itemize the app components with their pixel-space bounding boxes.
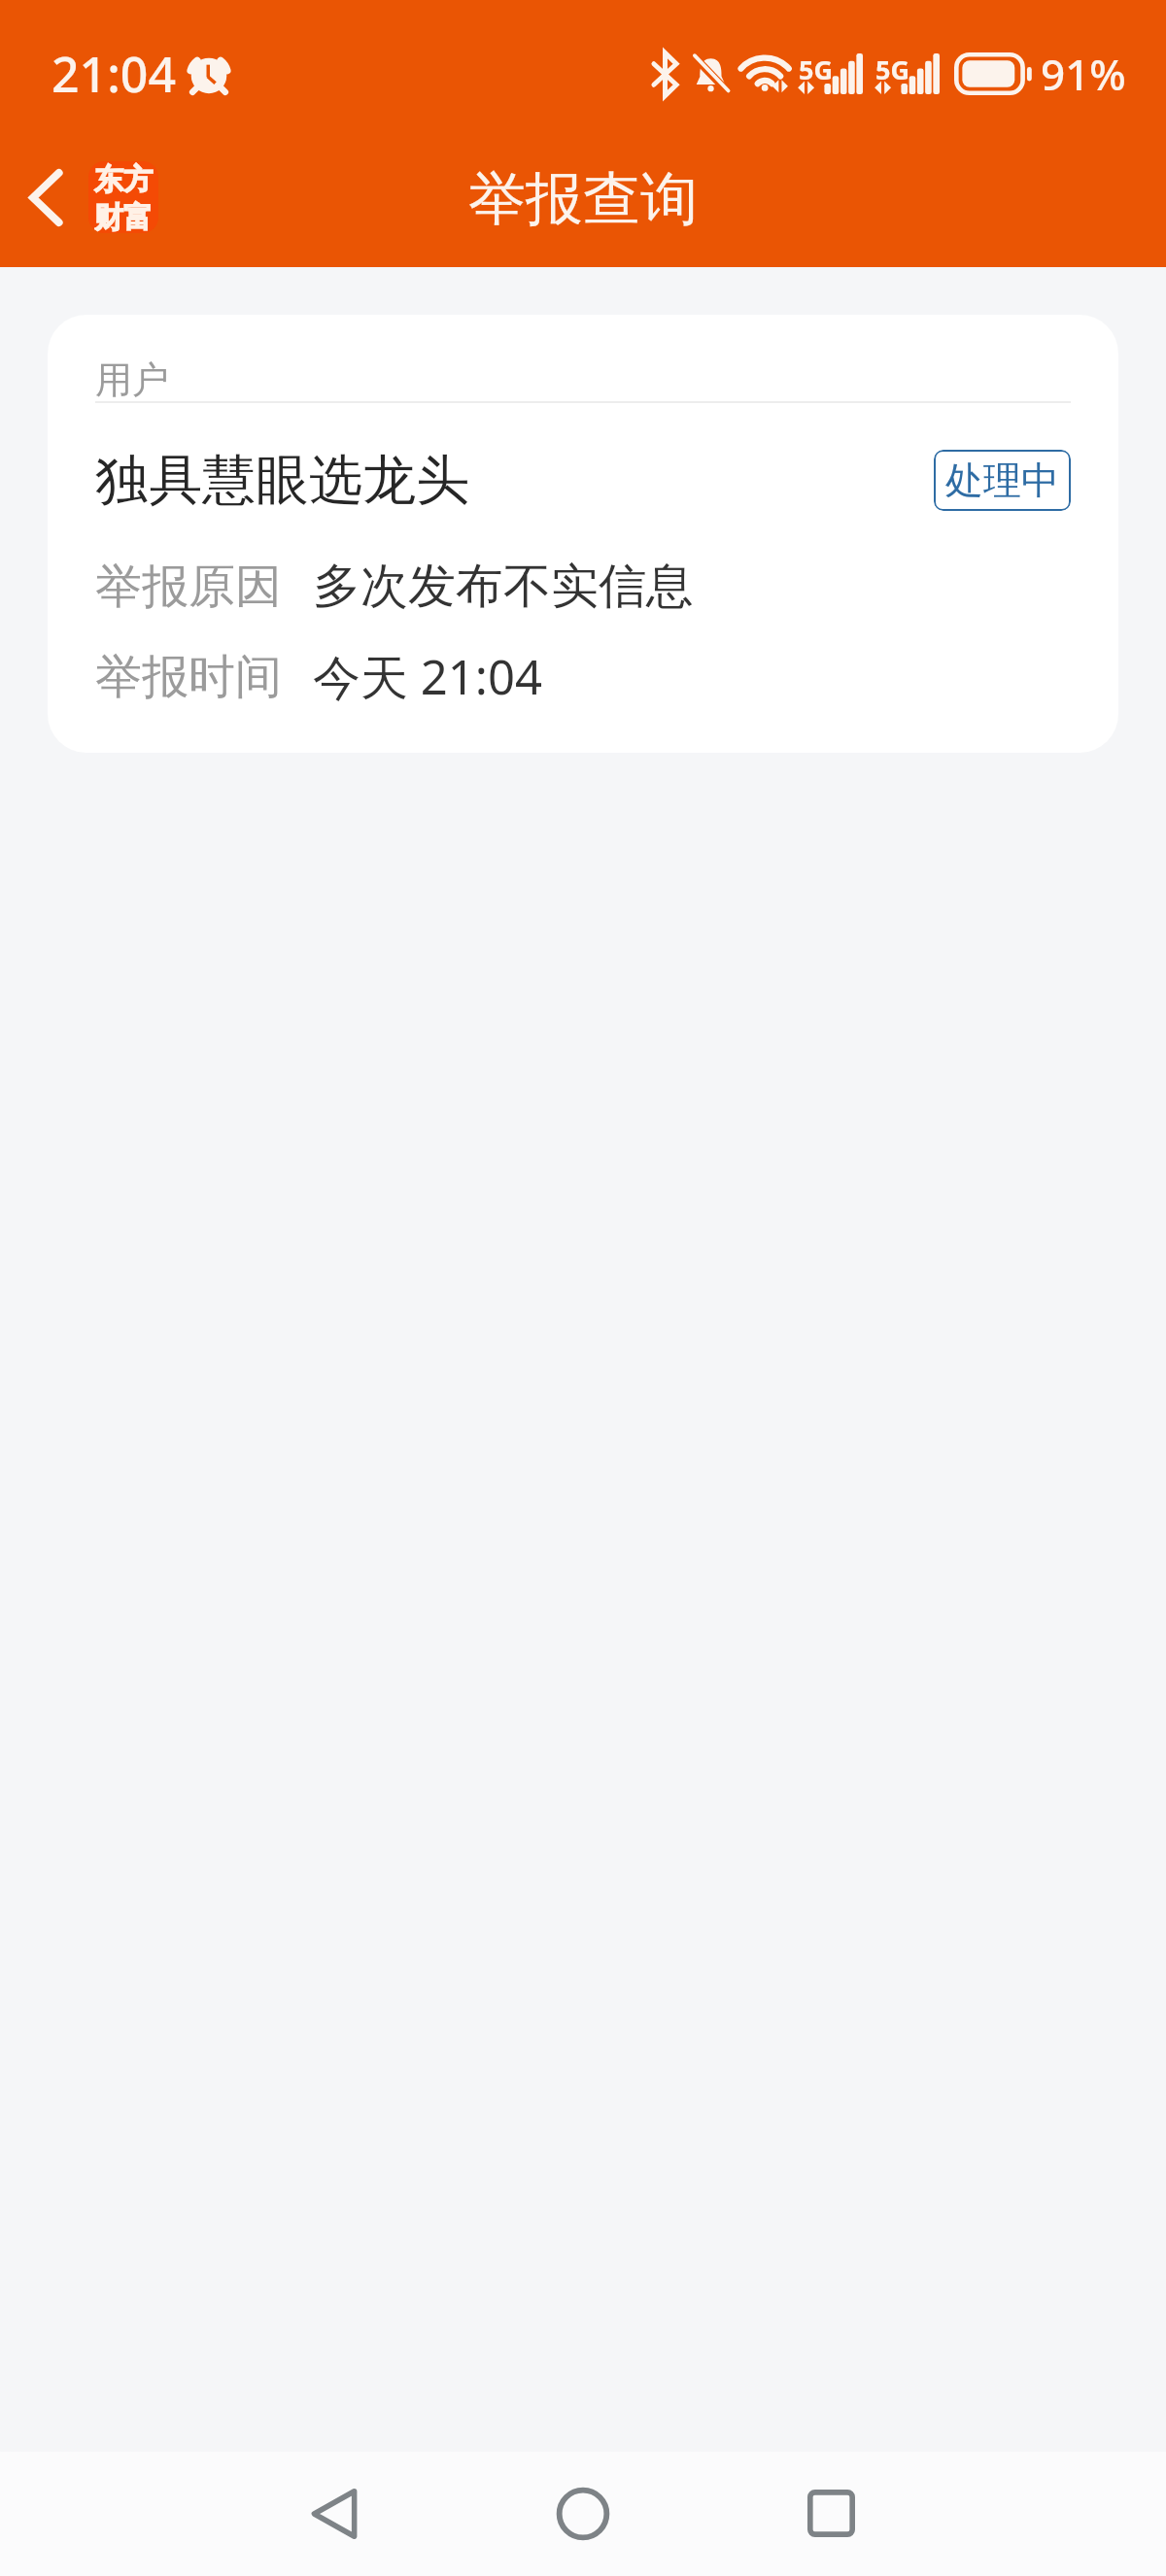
staticText: 今天 21:04 (313, 644, 542, 709)
button[interactable]: 用户 (48, 315, 1118, 753)
staticText: 财富 (94, 199, 153, 233)
staticText: 处理中 (945, 457, 1059, 504)
staticText: 举报时间 (95, 648, 282, 706)
button[interactable]: 处理中 (934, 450, 1071, 511)
staticText: 用户 (95, 356, 169, 403)
staticText: 21:04 (51, 41, 176, 107)
button[interactable]: Recent apps (772, 2455, 889, 2571)
button[interactable]: Back (0, 148, 174, 247)
staticText: 东方 (94, 161, 153, 198)
staticText: 91% (1041, 45, 1126, 103)
staticText: 5G (875, 51, 909, 87)
staticText: 5G (799, 51, 833, 87)
button[interactable]: Home (525, 2456, 641, 2572)
staticText: 独具慧眼选龙头 (95, 447, 469, 514)
staticText: 举报查询 (468, 163, 698, 235)
button[interactable]: Back (276, 2456, 393, 2572)
staticText: 举报原因 (95, 558, 282, 616)
staticText: 多次发布不实信息 (313, 557, 694, 617)
